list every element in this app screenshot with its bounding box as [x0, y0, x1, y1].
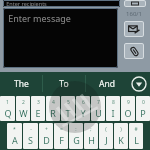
button[interactable]: # [129, 123, 143, 149]
staticText: W [19, 107, 28, 119]
button[interactable]: 5 [61, 96, 75, 121]
button[interactable]: 3 [31, 96, 45, 121]
button[interactable]: Attach file [124, 43, 144, 59]
staticText: K [118, 134, 124, 146]
staticText: L [134, 134, 139, 146]
button[interactable]: 0 [136, 96, 150, 121]
button[interactable]: To [43, 72, 85, 95]
button[interactable]: ( [99, 123, 113, 149]
staticText: 0 [142, 99, 145, 106]
button[interactable]: Add recipient [124, 0, 146, 7]
button[interactable]: ) [114, 123, 128, 149]
staticText: 7 [97, 99, 100, 106]
staticText: P [140, 107, 146, 119]
button[interactable]: 4 [46, 96, 60, 121]
staticText: 3 [37, 99, 40, 106]
staticText: H [88, 134, 95, 146]
staticText: 1 [6, 99, 9, 106]
staticText: R [50, 107, 56, 119]
staticText: D [43, 134, 50, 146]
staticText: 6 [82, 99, 85, 106]
staticText: F [59, 134, 64, 146]
staticText: 4 [52, 99, 55, 106]
staticText: G [73, 134, 80, 146]
button[interactable]: : [69, 123, 83, 149]
staticText: 5 [67, 99, 70, 106]
button[interactable]: And [86, 72, 128, 95]
button[interactable]: 7 [91, 96, 105, 121]
button[interactable]: 1 [0, 96, 15, 121]
staticText: ; [90, 126, 92, 133]
button[interactable]: Enter recipients [3, 0, 120, 7]
staticText: - [30, 126, 32, 133]
button[interactable]: = [54, 123, 68, 149]
staticText: ) [120, 126, 122, 133]
staticText: S [28, 134, 33, 146]
staticText: O [124, 107, 132, 119]
staticText: Enter message [8, 12, 71, 24]
button[interactable]: + [39, 123, 53, 149]
button[interactable]: * [7, 123, 22, 149]
staticText: : [75, 126, 77, 133]
staticText: Y [80, 107, 86, 119]
staticText: The [14, 78, 29, 90]
button[interactable]: 9 [121, 96, 135, 121]
button[interactable]: The [0, 72, 42, 95]
staticText: * [13, 126, 16, 133]
staticText: 9 [127, 99, 130, 106]
staticText: Q [4, 107, 12, 119]
staticText: 2 [22, 99, 25, 106]
staticText: 8 [112, 99, 115, 106]
staticText: To [59, 78, 69, 90]
staticText: And [99, 78, 115, 90]
staticText: # [134, 126, 138, 133]
staticText: T [65, 107, 71, 119]
staticText: Enter recipients [6, 0, 47, 7]
button[interactable]: Enter message [3, 8, 118, 68]
staticText: E [35, 107, 41, 119]
staticText: J [105, 134, 108, 146]
button[interactable]: 2 [16, 96, 30, 121]
button[interactable]: More suggestions [128, 72, 150, 95]
staticText: A [12, 134, 18, 146]
button[interactable]: ; [84, 123, 98, 149]
staticText: ( [105, 126, 107, 133]
staticText: I [111, 107, 115, 119]
staticText: = [60, 126, 63, 133]
button[interactable]: 6 [76, 96, 90, 121]
button[interactable]: - [23, 123, 38, 149]
staticText: U [95, 107, 102, 119]
staticText: 160/1 [126, 10, 142, 18]
staticText: + [45, 126, 48, 133]
button[interactable]: 8 [106, 96, 120, 121]
button[interactable]: Send message [124, 21, 144, 37]
